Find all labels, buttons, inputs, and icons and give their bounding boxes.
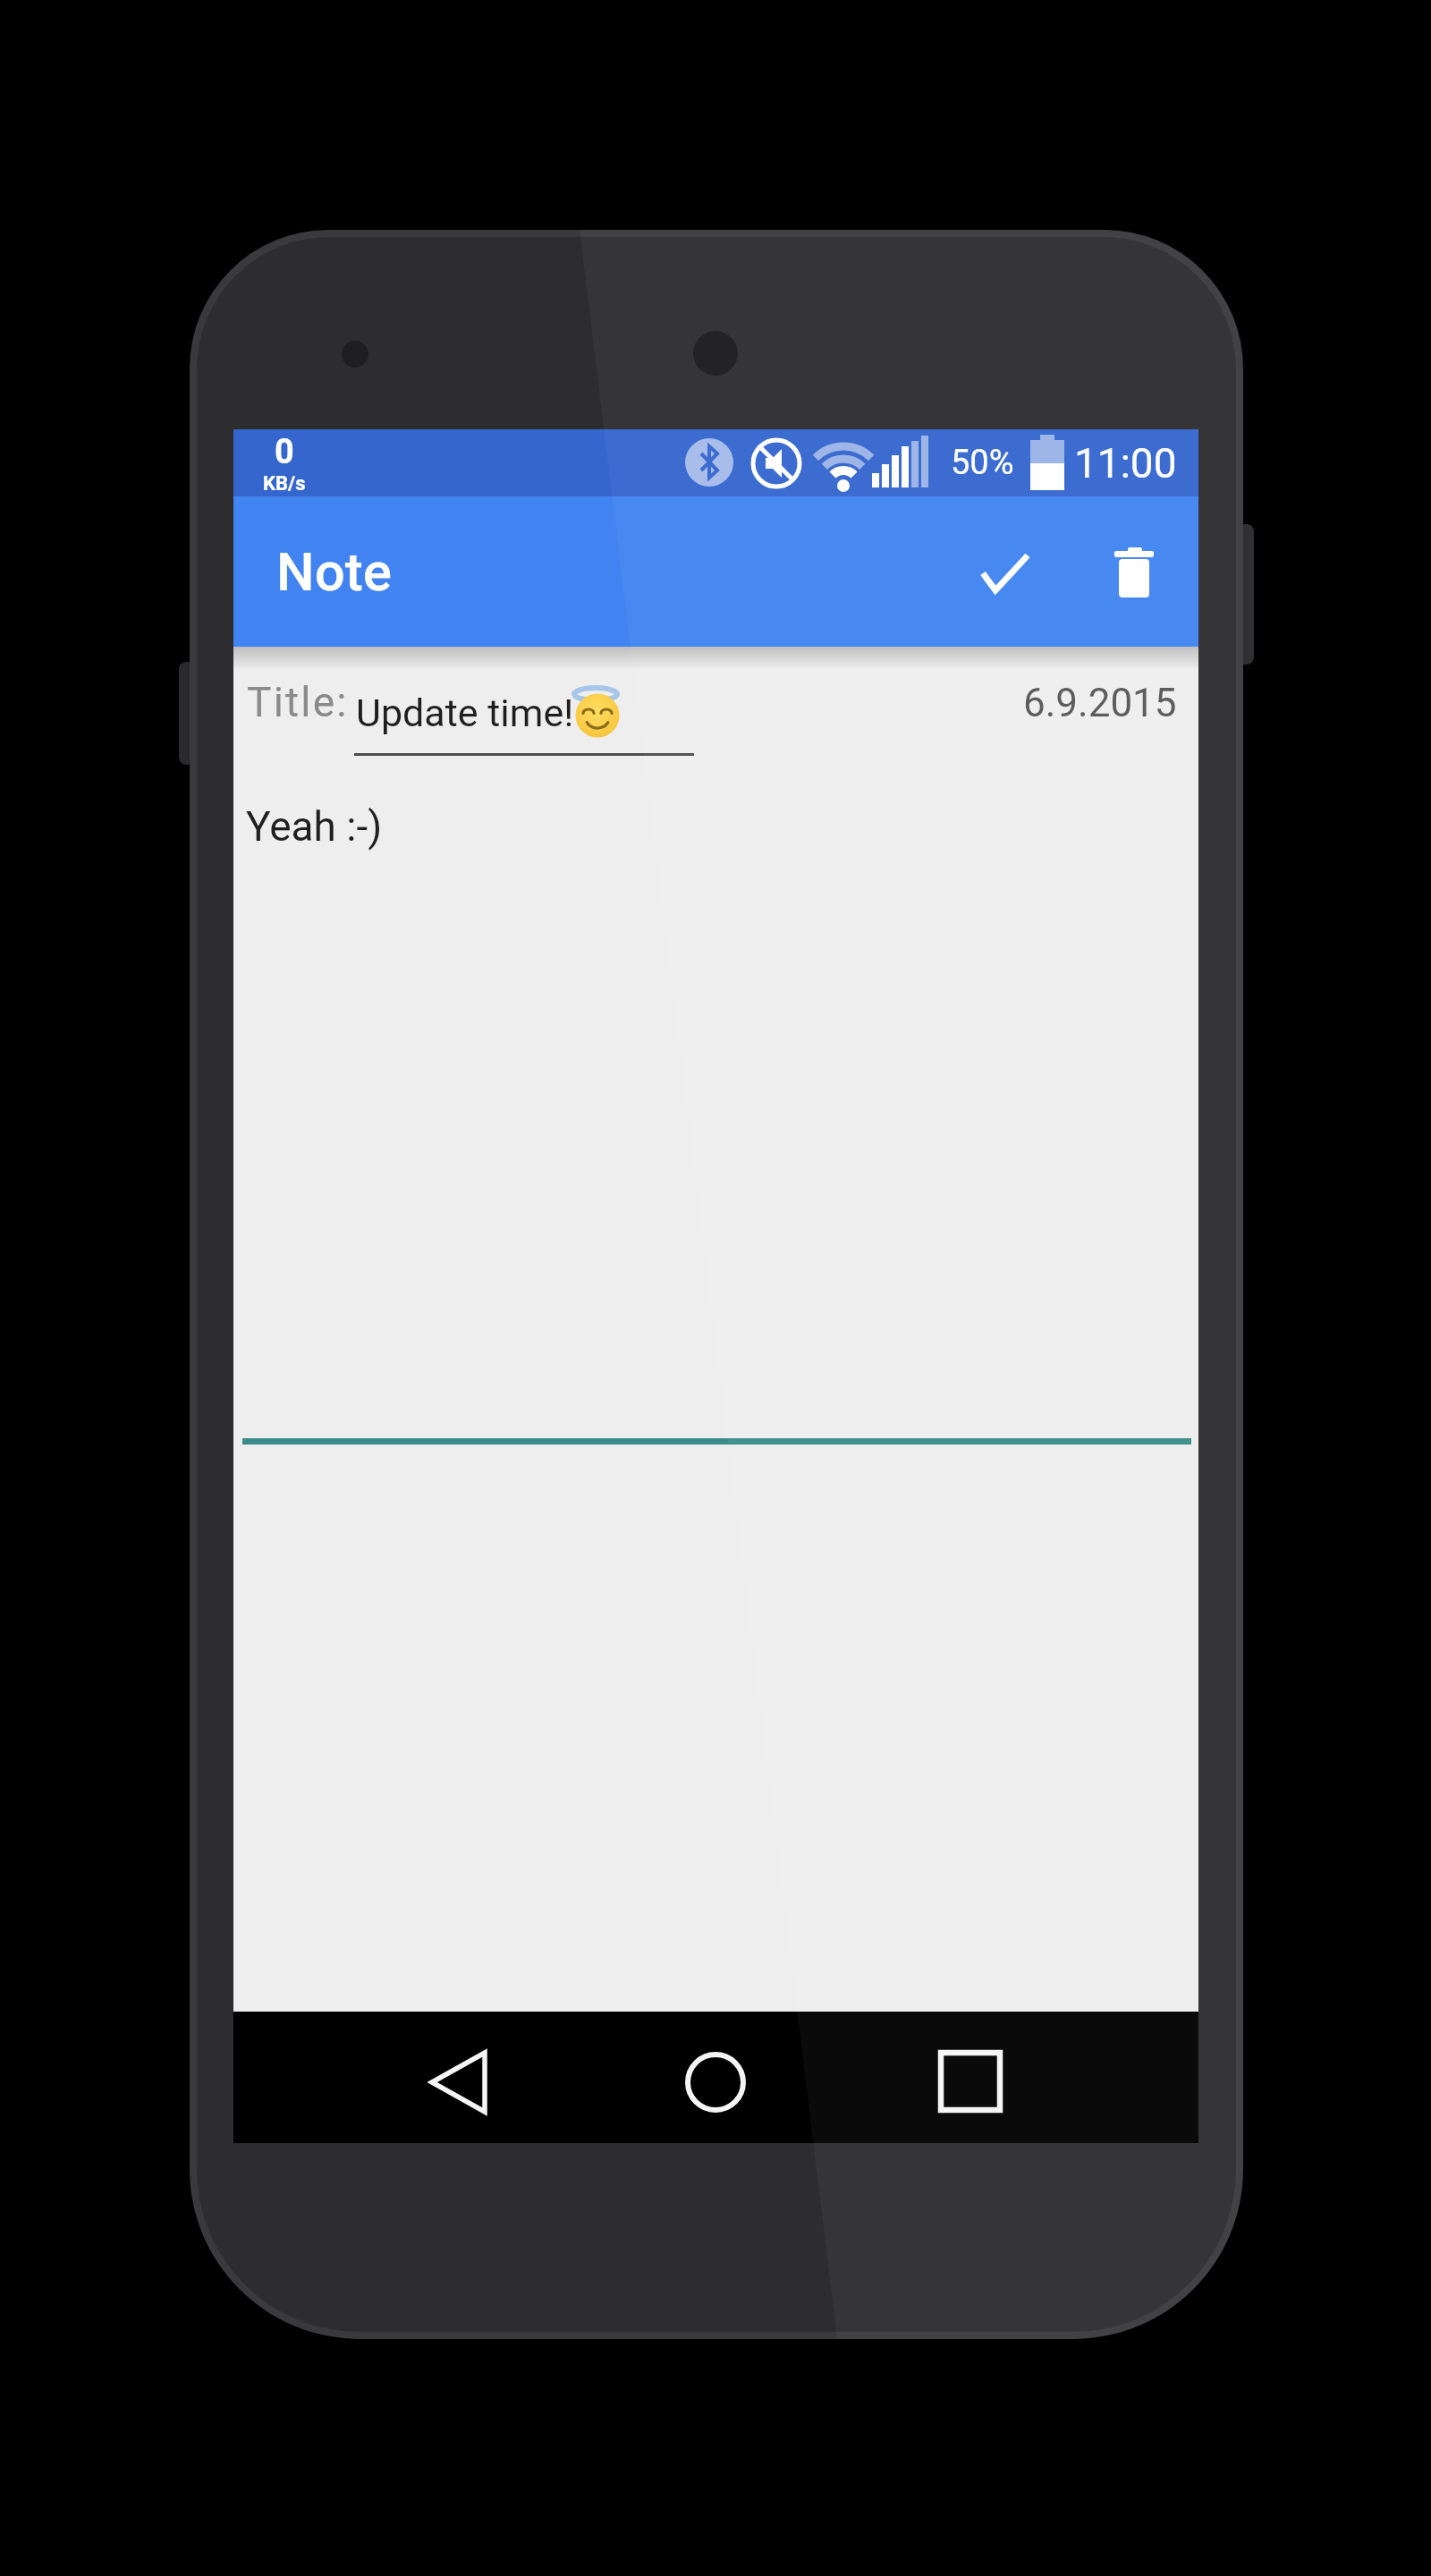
staticText: Update time! [356,691,574,735]
staticText: 6.9.2015 [1023,680,1177,726]
button[interactable] [921,2032,1020,2131]
staticText: KB/s [263,472,306,496]
staticText: Title: [247,678,349,726]
staticText: Yeah :-) [246,802,383,851]
staticText: 50% [951,443,1014,483]
button[interactable] [354,647,694,756]
staticText: Note [276,540,392,603]
button[interactable] [666,2032,765,2131]
staticText: 11:00 [1074,439,1177,487]
button[interactable] [1090,529,1176,614]
button[interactable]: Yeah :-) [233,790,1198,1438]
button[interactable] [962,529,1048,614]
button[interactable] [411,2033,509,2131]
staticText: 0 [275,432,294,472]
